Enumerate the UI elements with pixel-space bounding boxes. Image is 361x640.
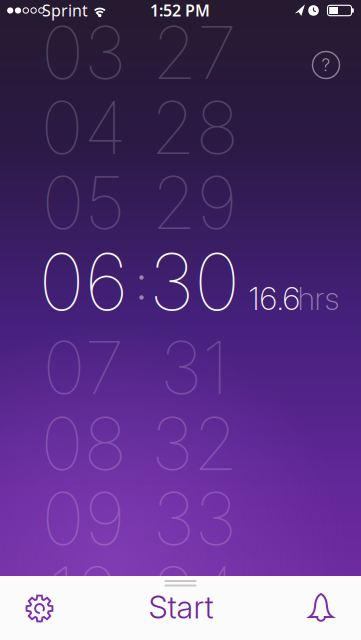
staticText: 09 (41, 474, 125, 562)
staticText: 30 (149, 235, 240, 329)
staticText: 04 (40, 83, 126, 171)
staticText: 34 (152, 549, 237, 637)
staticText: ? (321, 54, 330, 75)
button[interactable] (17, 586, 61, 630)
staticText: 05 (41, 158, 125, 246)
button[interactable] (299, 585, 343, 629)
staticText: 03 (41, 8, 126, 96)
staticText: 27 (152, 8, 237, 96)
button[interactable]: Start (116, 582, 246, 632)
staticText: 1:52 PM (150, 0, 210, 21)
staticText: 33 (152, 474, 236, 562)
button[interactable]: ? (309, 48, 343, 82)
staticText: 32 (151, 399, 238, 487)
staticText: 10 (48, 549, 118, 637)
staticText: Sprint (42, 0, 88, 21)
staticText: Start (148, 588, 213, 626)
staticText: 28 (150, 83, 238, 171)
staticText: 07 (42, 323, 124, 411)
staticText: 06 (38, 235, 128, 329)
staticText: 31 (160, 323, 229, 411)
staticText: 16.6 (248, 279, 300, 317)
staticText: 08 (40, 399, 126, 487)
staticText: 29 (151, 158, 237, 246)
staticText: hrs (297, 279, 339, 317)
